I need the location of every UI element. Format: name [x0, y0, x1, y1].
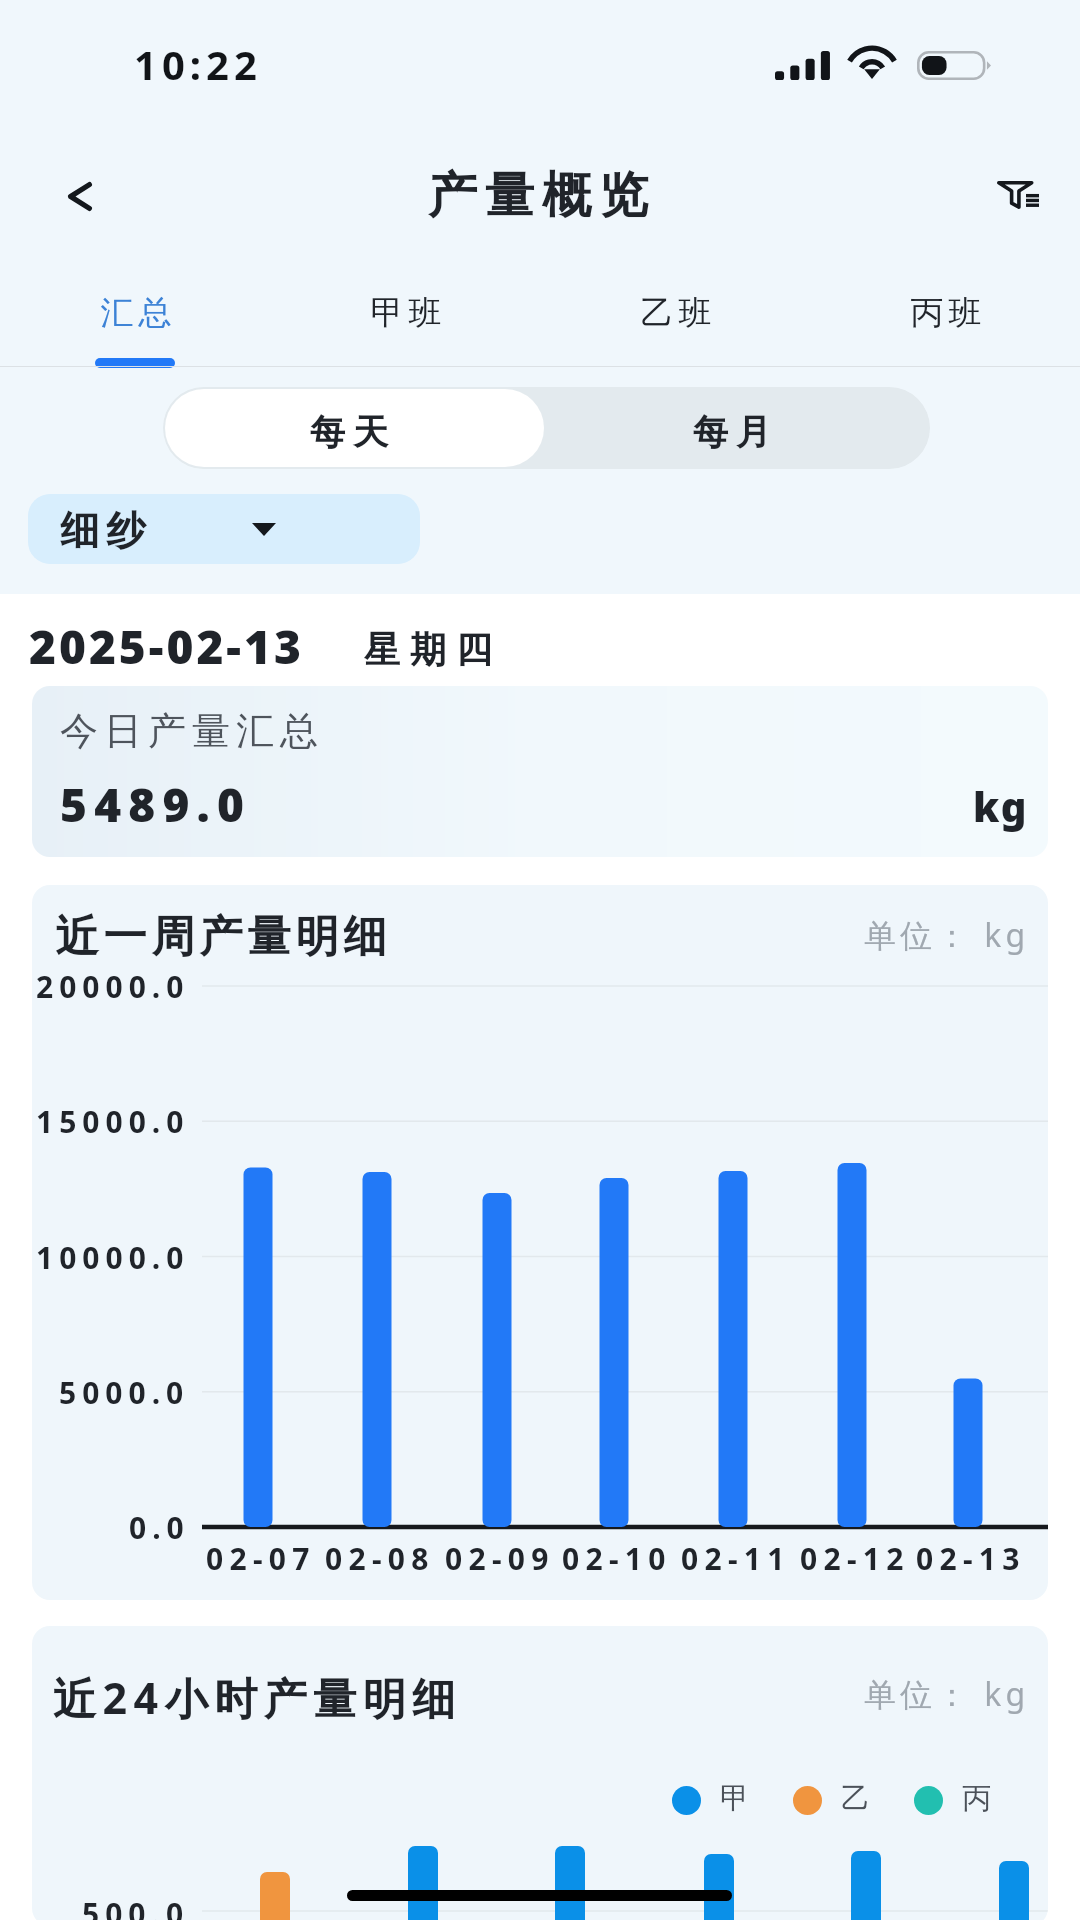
- staticText: 02-08: [325, 1538, 435, 1579]
- staticText: 丙班: [908, 292, 984, 334]
- button[interactable]: 每月: [546, 387, 930, 469]
- staticText: 0.0: [129, 1507, 190, 1548]
- staticText: 2025-02-13: [29, 615, 304, 678]
- staticText: 今日产量汇总: [57, 707, 321, 755]
- staticText: 02-12: [800, 1538, 910, 1579]
- button[interactable]: 每天: [165, 389, 544, 467]
- staticText: 星期四: [359, 627, 497, 672]
- staticText: 20000.0: [36, 966, 190, 1007]
- staticText: 02-11: [681, 1538, 791, 1579]
- staticText: kg: [973, 779, 1029, 833]
- staticText: 每天: [306, 410, 392, 454]
- staticText: 02-10: [562, 1538, 672, 1579]
- staticText: 产量概览: [424, 165, 652, 227]
- staticText: 10000.0: [36, 1237, 190, 1278]
- staticText: 细纱: [57, 506, 149, 555]
- staticText: 近24小时产量明细: [53, 1668, 462, 1727]
- staticText: 乙班: [638, 292, 714, 334]
- staticText: 汇总: [98, 292, 174, 334]
- button[interactable]: Back: [0, 140, 140, 256]
- staticText: 5000.0: [59, 1372, 190, 1413]
- staticText: 500.0: [82, 1893, 190, 1920]
- staticText: 甲班: [368, 292, 444, 334]
- staticText: 15000.0: [36, 1101, 190, 1142]
- staticText: 甲: [720, 1780, 749, 1817]
- button[interactable]: 乙班: [540, 256, 810, 370]
- staticText: 02-13: [916, 1538, 1026, 1579]
- staticText: 乙: [841, 1780, 870, 1817]
- staticText: 每月: [689, 410, 775, 454]
- button[interactable]: Filter: [964, 140, 1080, 256]
- staticText: 10:22: [134, 37, 262, 91]
- button[interactable]: 汇总: [0, 256, 270, 370]
- button[interactable]: 细纱: [28, 494, 420, 564]
- staticText: 丙: [962, 1780, 991, 1817]
- staticText: 单位： kg: [864, 1672, 1030, 1716]
- staticText: 02-07: [206, 1538, 316, 1579]
- button[interactable]: 丙班: [810, 256, 1080, 370]
- staticText: 单位： kg: [864, 913, 1030, 957]
- staticText: 5489.0: [60, 773, 252, 836]
- button[interactable]: 甲班: [270, 256, 540, 370]
- staticText: 近一周产量明细: [53, 910, 389, 964]
- staticText: 02-09: [445, 1538, 555, 1579]
